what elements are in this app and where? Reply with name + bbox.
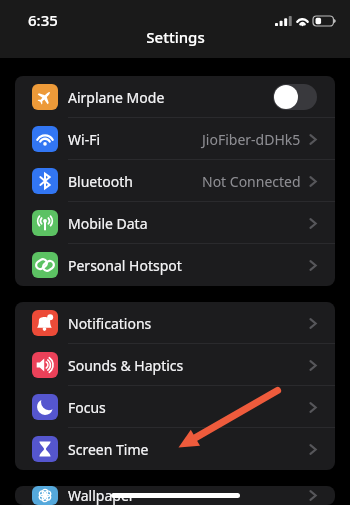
staticText: Airplane Mode — [68, 88, 165, 107]
button[interactable]: Sounds & Haptics — [15, 344, 335, 386]
staticText: Notifications — [68, 314, 152, 333]
button[interactable]: Bluetooth — [15, 160, 335, 202]
staticText: JioFiber-dDHk5 — [202, 130, 301, 149]
staticText: Bluetooth — [68, 172, 133, 191]
staticText: Wi-Fi — [68, 130, 101, 149]
button[interactable]: Wi-Fi — [15, 118, 335, 160]
button[interactable]: Focus — [15, 386, 335, 428]
button[interactable]: Screen Time — [15, 428, 335, 470]
button[interactable]: Mobile Data — [15, 202, 335, 244]
button[interactable]: Wallpaper — [15, 486, 335, 505]
staticText: Screen Time — [68, 440, 149, 459]
staticText: 6:35 — [28, 10, 58, 30]
staticText: Not Connected — [202, 172, 301, 191]
button[interactable]: Personal Hotspot — [15, 244, 335, 286]
staticText: Mobile Data — [68, 214, 148, 233]
staticText: Sounds & Haptics — [68, 356, 184, 375]
button[interactable]: Airplane Mode — [15, 76, 335, 118]
staticText: Personal Hotspot — [68, 256, 182, 275]
button[interactable]: Notifications — [15, 302, 335, 344]
button[interactable]: Airplane Mode toggle — [273, 84, 317, 110]
staticText: Focus — [68, 398, 106, 417]
staticText: Wallpaper — [68, 486, 135, 505]
staticText: Settings — [146, 27, 205, 47]
